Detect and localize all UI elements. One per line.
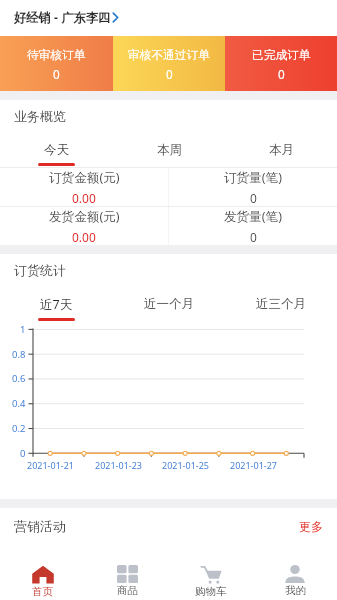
staticText: 近三个月 bbox=[256, 296, 306, 312]
button[interactable]: 近一个月 bbox=[113, 285, 225, 321]
staticText: 首页 bbox=[32, 585, 53, 598]
button[interactable]: 近7天 bbox=[0, 285, 113, 321]
button[interactable]: 购物车 bbox=[169, 548, 253, 600]
staticText: 0 bbox=[250, 229, 257, 245]
button[interactable]: 商品 bbox=[85, 548, 169, 600]
staticText: 0.00 bbox=[72, 190, 96, 206]
staticText: 已完成订单 bbox=[252, 48, 311, 63]
staticText: 2021-01-25 bbox=[162, 459, 209, 471]
staticText: 0.6 bbox=[12, 372, 26, 385]
staticText: 我的 bbox=[285, 584, 306, 597]
button[interactable]: 今天 bbox=[0, 131, 113, 167]
staticText: 0 bbox=[278, 66, 285, 82]
staticText: 本月 bbox=[269, 142, 294, 158]
staticText: 0 bbox=[53, 66, 60, 82]
staticText: 0.8 bbox=[12, 348, 26, 361]
button[interactable]: 好经销 - 广东李四 bbox=[0, 0, 337, 36]
staticText: 今天 bbox=[44, 142, 69, 158]
staticText: 近一个月 bbox=[144, 296, 194, 312]
staticText: 本周 bbox=[157, 142, 182, 158]
staticText: 商品 bbox=[117, 584, 138, 597]
staticText: 营销活动 bbox=[14, 518, 66, 534]
staticText: 业务概览 bbox=[14, 108, 66, 124]
button[interactable]: 待审核订单 bbox=[0, 36, 113, 91]
staticText: 好经销 - 广东李四 bbox=[14, 9, 111, 26]
staticText: 0 bbox=[20, 447, 26, 460]
staticText: 待审核订单 bbox=[27, 48, 86, 63]
staticText: 2021-01-27 bbox=[230, 459, 277, 471]
staticText: 近7天 bbox=[40, 296, 73, 313]
button[interactable]: 我的 bbox=[253, 548, 337, 600]
staticText: 1 bbox=[20, 323, 26, 336]
button[interactable]: 营销活动 bbox=[0, 508, 337, 544]
button[interactable]: 首页 bbox=[0, 548, 85, 600]
button[interactable]: 本周 bbox=[113, 131, 225, 167]
staticText: 审核不通过订单 bbox=[128, 48, 210, 63]
staticText: 订货量(笔) bbox=[224, 169, 282, 186]
staticText: 0.4 bbox=[12, 397, 26, 410]
staticText: 2021-01-21 bbox=[27, 459, 74, 471]
staticText: 更多 bbox=[299, 519, 323, 534]
staticText: 2021-01-23 bbox=[95, 459, 142, 471]
button[interactable]: 本月 bbox=[225, 131, 337, 167]
staticText: 订货统计 bbox=[14, 262, 66, 278]
button[interactable]: 审核不通过订单 bbox=[113, 36, 225, 91]
staticText: 订货金额(元) bbox=[49, 169, 120, 186]
button[interactable]: 已完成订单 bbox=[225, 36, 337, 91]
staticText: 0 bbox=[166, 66, 173, 82]
button[interactable]: 近三个月 bbox=[225, 285, 337, 321]
staticText: 0.00 bbox=[72, 229, 96, 245]
staticText: 0.2 bbox=[12, 422, 26, 435]
staticText: 购物车 bbox=[195, 585, 227, 598]
staticText: 发货量(笔) bbox=[224, 208, 282, 225]
staticText: 发货金额(元) bbox=[49, 208, 120, 225]
staticText: 0 bbox=[250, 190, 257, 206]
